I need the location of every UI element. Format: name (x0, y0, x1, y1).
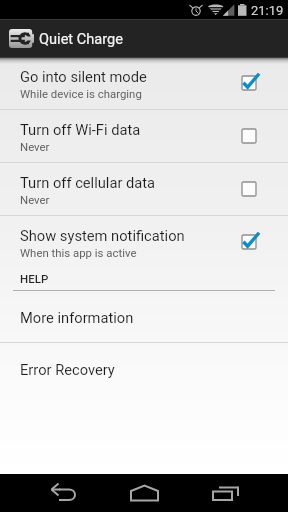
button[interactable]: Turn off Wi-Fi data (0, 110, 288, 162)
staticText: Quiet Charge (39, 30, 123, 47)
button[interactable]: Unchecked (235, 174, 265, 204)
button[interactable]: Checked (235, 68, 265, 98)
staticText: Never (20, 193, 50, 206)
button[interactable]: Recents (192, 474, 288, 512)
staticText: While device is charging (20, 87, 142, 100)
button[interactable]: Turn off cellular data (0, 163, 288, 215)
button[interactable]: Back (0, 474, 96, 512)
staticText: Never (20, 140, 50, 153)
button[interactable]: Go into silent mode (0, 57, 288, 109)
button[interactable]: More information (0, 291, 288, 342)
button[interactable]: Error Recovery (0, 343, 288, 394)
staticText: 21:19 (251, 3, 284, 18)
staticText: HELP (20, 272, 49, 285)
button[interactable]: Show system notification (0, 216, 288, 268)
button[interactable]: Unchecked (235, 121, 265, 151)
staticText: Show system notification (20, 227, 185, 244)
staticText: When this app is active (20, 246, 137, 259)
staticText: Go into silent mode (20, 68, 147, 85)
button[interactable]: Checked (235, 227, 265, 257)
staticText: Turn off cellular data (20, 174, 156, 191)
staticText: More information (20, 309, 134, 326)
staticText: Error Recovery (20, 361, 115, 378)
staticText: Turn off Wi-Fi data (20, 121, 141, 138)
button[interactable]: Home (96, 474, 192, 512)
